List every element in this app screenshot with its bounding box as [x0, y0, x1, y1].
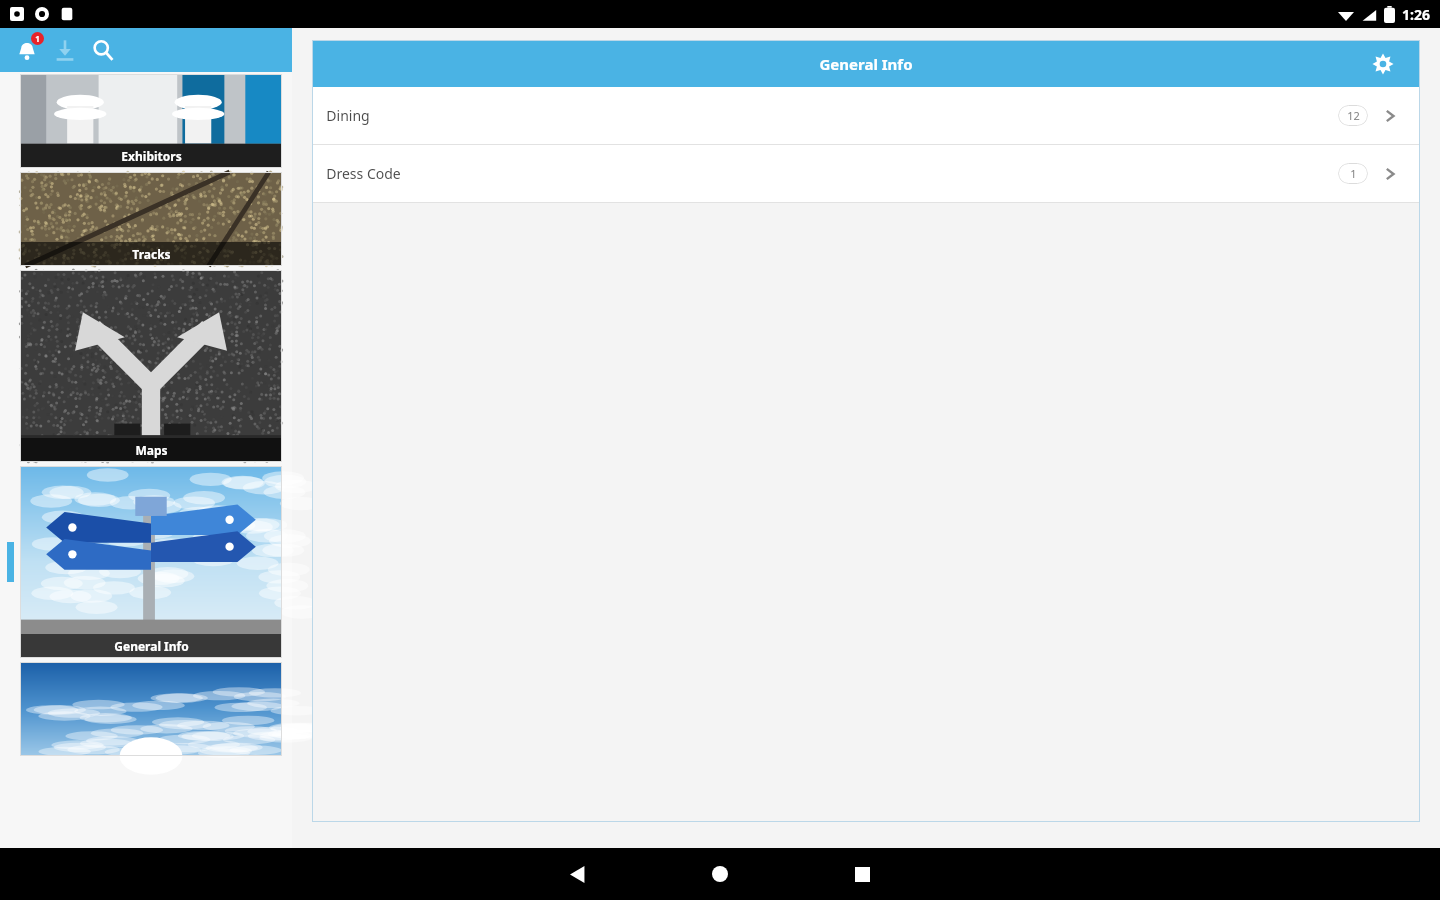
staticText: Dining	[326, 106, 370, 125]
staticText: 1:26	[1402, 5, 1430, 24]
staticText: Maps	[135, 442, 168, 458]
button[interactable]: Dress Code	[312, 145, 1420, 202]
staticText: Tracks	[132, 246, 171, 262]
staticText: General Info	[114, 638, 189, 654]
staticText: 12	[1347, 108, 1360, 123]
button[interactable]: Maps	[0, 268, 292, 464]
staticText: Exhibitors	[121, 148, 182, 164]
button[interactable]	[0, 660, 292, 758]
button[interactable]: Recents	[832, 848, 892, 900]
button[interactable]: Tracks	[0, 170, 292, 268]
button[interactable]: Notifications	[8, 31, 46, 69]
staticText: 1	[1350, 166, 1357, 181]
button[interactable]: Home	[690, 848, 750, 900]
staticText: General Info	[819, 54, 913, 74]
button[interactable]: Settings	[1366, 47, 1400, 81]
button[interactable]: Back	[548, 848, 608, 900]
button[interactable]: Search	[84, 31, 122, 69]
button[interactable]: General Info	[0, 464, 292, 660]
button[interactable]: Downloads	[46, 31, 84, 69]
button[interactable]: Dining	[312, 87, 1420, 144]
staticText: 1	[35, 33, 40, 44]
button[interactable]: Exhibitors	[0, 72, 292, 170]
staticText: Dress Code	[326, 164, 401, 183]
